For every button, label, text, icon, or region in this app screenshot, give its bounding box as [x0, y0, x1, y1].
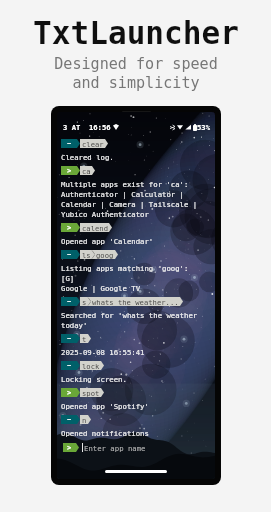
staticText: Searched for 'whats the weather today' — [61, 310, 198, 330]
staticText: spot — [82, 389, 100, 397]
staticText: Multiple apps exist for 'ca': Authentica… — [61, 179, 198, 219]
staticText: clear — [82, 140, 104, 148]
button[interactable]: ~ — [61, 250, 118, 259]
staticText: Listing apps matching 'goog': [G] Google… — [61, 263, 189, 293]
staticText: > — [67, 389, 72, 397]
staticText: calend — [82, 224, 108, 232]
staticText: 53% — [197, 123, 210, 131]
staticText: TxtLauncher — [33, 15, 239, 51]
staticText: ~ — [67, 416, 72, 424]
staticText: ~ — [67, 298, 72, 306]
button[interactable]: > — [61, 388, 104, 397]
staticText: ls — [82, 251, 91, 259]
staticText: goog — [96, 251, 114, 259]
staticText: Enter app name — [84, 444, 146, 452]
staticText: ~ — [67, 140, 72, 148]
staticText: whats the weather... — [92, 298, 179, 306]
staticText: Designed for speed and simplicity — [54, 55, 218, 92]
staticText: ~ — [67, 251, 72, 259]
staticText: t — [82, 335, 87, 343]
button[interactable]: ~ — [61, 297, 183, 306]
staticText: Locking screen. — [61, 374, 127, 384]
staticText: Opened notifications — [61, 428, 149, 438]
staticText: > — [67, 224, 72, 232]
button[interactable]: > — [63, 443, 210, 452]
staticText: lock — [82, 362, 100, 370]
staticText: Cleared log. — [61, 152, 114, 162]
button[interactable]: ~ — [61, 361, 104, 370]
button[interactable]: > — [61, 166, 95, 175]
staticText: 2025-09-08 16:55:41 — [61, 347, 145, 357]
button[interactable]: ~ — [61, 139, 108, 148]
staticText: Opened app 'Spotify' — [61, 401, 149, 411]
staticText: > — [67, 444, 72, 452]
staticText: ~ — [67, 335, 72, 343]
staticText: Opened app 'Calendar' — [61, 236, 154, 246]
button[interactable]: ~ — [61, 415, 91, 424]
staticText: n — [82, 416, 87, 424]
button[interactable]: ~ — [61, 334, 91, 343]
staticText: > — [67, 167, 72, 175]
button[interactable]: > — [61, 223, 112, 232]
staticText: ca — [82, 167, 91, 175]
staticText: ~ — [67, 362, 72, 370]
staticText: s — [82, 298, 87, 306]
staticText: 3 AT 16:56 — [63, 123, 111, 131]
